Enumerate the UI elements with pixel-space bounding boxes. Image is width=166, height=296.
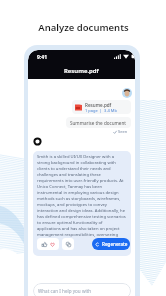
staticText: Resume.pdf	[85, 102, 112, 108]
staticText: Seen	[118, 129, 128, 134]
staticText: Analyze documents	[38, 21, 129, 34]
staticText: 1 page | 3.4 Mb	[85, 108, 117, 113]
button[interactable]: Copy	[62, 238, 74, 250]
button[interactable]: Like or love response	[37, 238, 59, 250]
staticText: Smith is a skilled UI/UX Designer with a…	[37, 154, 127, 238]
button[interactable]: Resume.pdf	[72, 100, 131, 114]
staticText: 9:41	[37, 54, 47, 61]
button[interactable]: Regenerate	[92, 238, 130, 250]
button[interactable]: What can I help you with	[33, 283, 131, 296]
button[interactable]: Summarise the document	[66, 117, 131, 128]
staticText: What can I help you with	[38, 288, 92, 294]
staticText: Resume.pdf	[64, 67, 99, 75]
staticText: Regenerate	[102, 241, 128, 247]
staticText: Summarise the document	[70, 120, 126, 126]
